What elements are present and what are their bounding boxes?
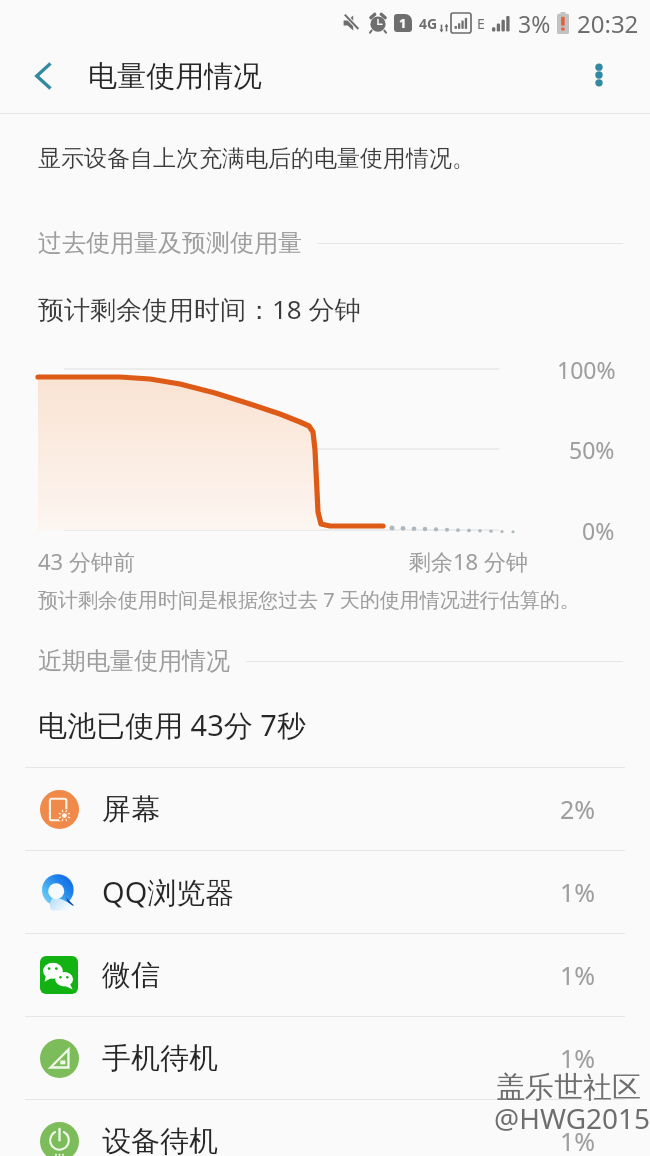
button[interactable]: More options <box>571 47 627 103</box>
button[interactable]: QQ浏览器 <box>0 851 650 933</box>
staticText: 3% <box>518 8 551 39</box>
button[interactable]: Back <box>19 52 67 100</box>
staticText: QQ浏览器 <box>102 872 235 912</box>
staticText: 显示设备自上次充满电后的电量使用情况。 <box>38 144 475 173</box>
button[interactable]: 设备待机 <box>0 1100 650 1156</box>
staticText: 100% <box>557 354 616 385</box>
button[interactable]: 手机待机 <box>0 1017 650 1099</box>
staticText: 设备待机 <box>102 1123 218 1156</box>
staticText: 1% <box>560 1041 596 1075</box>
staticText: 1% <box>560 958 596 992</box>
staticText: 2% <box>560 792 596 826</box>
staticText: 预计剩余使用时间是根据您过去 7 天的使用情况进行估算的。 <box>38 586 580 613</box>
staticText: 1 <box>399 14 407 32</box>
staticText: @HWG2015 <box>495 1100 650 1138</box>
staticText: 50% <box>569 434 615 465</box>
button[interactable]: 微信 <box>0 934 650 1016</box>
staticText: 1% <box>560 1124 596 1156</box>
staticText: 43 分钟前 <box>38 546 135 576</box>
staticText: @HWG2015 <box>494 1099 650 1137</box>
staticText: 预计剩余使用时间：18 分钟 <box>38 291 361 327</box>
staticText: E <box>477 14 485 33</box>
staticText: 剩余18 分钟 <box>409 546 528 576</box>
staticText: 电量使用情况 <box>88 58 262 95</box>
staticText: 过去使用量及预测使用量 <box>38 228 302 258</box>
staticText: 电池已使用 43分 7秒 <box>38 705 306 745</box>
staticText: 1% <box>560 875 596 909</box>
staticText: 手机待机 <box>102 1040 218 1077</box>
staticText: 近期电量使用情况 <box>38 646 230 676</box>
staticText: 微信 <box>102 957 160 994</box>
staticText: 盖乐世社区 <box>497 1070 642 1107</box>
staticText: 盖乐世社区 <box>496 1069 641 1106</box>
staticText: 0% <box>582 515 615 546</box>
staticText: 屏幕 <box>102 791 160 828</box>
staticText: 20:32 <box>577 7 639 39</box>
button[interactable]: 屏幕 <box>0 768 650 850</box>
staticText: 4G <box>419 14 438 33</box>
